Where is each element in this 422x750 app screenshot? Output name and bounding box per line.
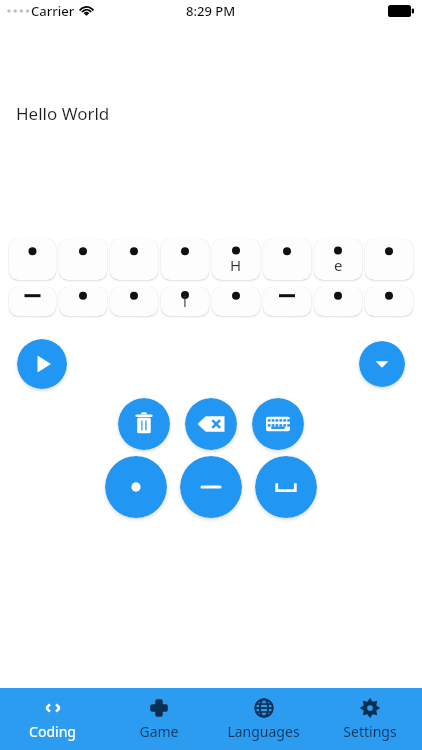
button[interactable]: Languages [211, 688, 316, 750]
button[interactable]: l [161, 287, 209, 316]
staticText: l [183, 291, 187, 311]
button[interactable]: e [314, 239, 362, 280]
button[interactable] [263, 239, 311, 280]
button[interactable] [59, 287, 107, 316]
button[interactable]: Dash [180, 456, 242, 518]
button[interactable]: Collapse keyboard [359, 341, 405, 387]
button[interactable] [9, 287, 56, 316]
button[interactable] [365, 287, 413, 316]
staticText: H [230, 255, 242, 275]
staticText: Carrier [31, 2, 75, 20]
button[interactable] [59, 239, 107, 280]
staticText: 8:29 PM [186, 2, 236, 20]
staticText: Hello World [16, 102, 110, 125]
staticText: Coding [29, 722, 76, 741]
button[interactable] [9, 239, 56, 280]
button[interactable]: Space [255, 456, 317, 518]
button[interactable]: Clear all [118, 398, 170, 450]
button[interactable] [263, 287, 311, 316]
staticText: Game [139, 722, 179, 741]
button[interactable] [161, 239, 209, 280]
button[interactable]: Toggle keyboard [252, 398, 304, 450]
button[interactable] [110, 239, 158, 280]
button[interactable]: H [212, 239, 260, 280]
button[interactable]: Settings [317, 688, 422, 750]
staticText: Languages [227, 722, 300, 741]
button[interactable]: Game [106, 688, 211, 750]
button[interactable]: Coding [0, 688, 105, 750]
button[interactable]: Dot [105, 456, 167, 518]
button[interactable] [365, 239, 413, 280]
button[interactable]: Play [17, 339, 67, 389]
button[interactable] [314, 287, 362, 316]
staticText: Settings [343, 722, 397, 741]
button[interactable] [110, 287, 158, 316]
button[interactable] [212, 287, 260, 316]
button[interactable]: Backspace [185, 398, 237, 450]
staticText: e [334, 255, 343, 275]
